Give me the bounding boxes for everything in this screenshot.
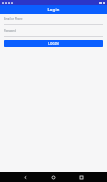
- staticText: Password: [4, 29, 16, 33]
- button[interactable]: Home: [50, 174, 57, 181]
- staticText: Email or Phone: [4, 17, 23, 21]
- staticText: Login: [47, 7, 60, 13]
- button[interactable]: Email or Phone: [0, 17, 107, 25]
- button[interactable]: Password: [0, 29, 107, 37]
- staticText: LOGIN: [48, 42, 59, 46]
- button[interactable]: Back: [22, 174, 29, 181]
- button[interactable]: Recent apps: [78, 174, 85, 181]
- button[interactable]: LOGIN: [4, 40, 103, 47]
